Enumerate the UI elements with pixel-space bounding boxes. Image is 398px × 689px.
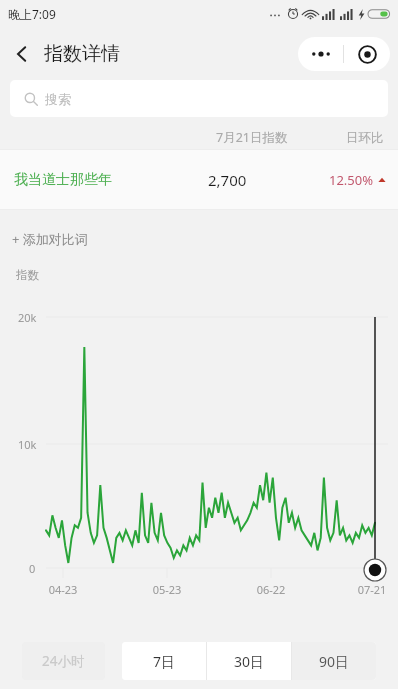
staticText: 指数详情: [44, 42, 120, 66]
staticText: 24小时: [42, 652, 85, 670]
staticText: 07-21: [351, 582, 393, 597]
staticText: 05-23: [146, 582, 188, 597]
button[interactable]: 搜索: [10, 80, 388, 117]
staticText: 10k: [18, 437, 37, 452]
staticText: 12.50%: [329, 171, 374, 189]
button[interactable]: 24小时: [22, 642, 105, 680]
button[interactable]: + 添加对比词: [12, 230, 88, 248]
button[interactable]: 我当道士那些年: [0, 150, 398, 210]
staticText: 2,700: [208, 170, 247, 190]
staticText: 我当道士那些年: [14, 171, 112, 189]
button[interactable]: Back: [0, 32, 44, 76]
staticText: + 添加对比词: [12, 230, 88, 248]
staticText: 7日: [153, 652, 176, 671]
button[interactable]: 7日: [122, 642, 206, 680]
staticText: 20k: [18, 310, 37, 325]
staticText: 06-22: [250, 582, 292, 597]
button[interactable]: Close: [344, 37, 390, 71]
staticText: 0: [29, 561, 36, 576]
staticText: 搜索: [45, 91, 71, 107]
staticText: 7月21日指数: [216, 129, 288, 146]
staticText: 90日: [319, 652, 350, 671]
staticText: 指数: [16, 268, 39, 282]
button[interactable]: 30日: [207, 642, 291, 680]
staticText: 晚上7:09: [8, 6, 56, 22]
staticText: 30日: [234, 652, 265, 671]
button[interactable]: 90日: [292, 642, 376, 680]
staticText: 04-23: [42, 582, 84, 597]
staticText: 日环比: [346, 130, 384, 146]
button[interactable]: More: [298, 37, 343, 71]
